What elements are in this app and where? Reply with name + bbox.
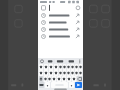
button[interactable]: letter [44, 70, 48, 76]
button[interactable]: letter [63, 70, 66, 76]
button[interactable]: letter [57, 76, 61, 82]
button[interactable]: letter [54, 64, 58, 70]
button[interactable]: letter [44, 64, 48, 70]
button[interactable]: letter [49, 64, 53, 70]
button[interactable]: sym [39, 82, 44, 88]
button[interactable] [38, 4, 83, 11]
button[interactable]: letter [59, 70, 62, 76]
button[interactable]: letter [63, 64, 66, 70]
button[interactable]: letter [79, 64, 82, 70]
button[interactable]: letter [79, 70, 82, 76]
button[interactable]: dot [45, 82, 50, 88]
button[interactable]: Suggestion [38, 19, 83, 26]
button[interactable]: letter [54, 70, 58, 76]
button[interactable]: letter [59, 64, 62, 70]
button[interactable]: letter [67, 64, 70, 70]
button[interactable]: letter [67, 76, 71, 82]
button[interactable]: letter [62, 76, 66, 82]
button[interactable]: letter [39, 70, 43, 76]
button[interactable]: shift [39, 76, 43, 82]
button[interactable]: letter [67, 70, 70, 76]
button[interactable]: letter [49, 70, 53, 76]
button[interactable]: letter [48, 76, 51, 82]
button[interactable]: letter [44, 76, 47, 82]
button[interactable]: Suggestion [38, 26, 83, 33]
button[interactable]: letter [71, 70, 74, 76]
button[interactable]: Suggestion [38, 33, 83, 40]
button[interactable]: Suggestion [38, 12, 83, 19]
button[interactable]: backspace [77, 76, 82, 82]
button[interactable]: send [75, 82, 82, 88]
button[interactable]: space [51, 82, 68, 88]
button[interactable]: letter [39, 64, 43, 70]
button[interactable]: letter [75, 64, 78, 70]
button[interactable]: letter [75, 70, 78, 76]
button[interactable]: letter [52, 76, 56, 82]
button[interactable]: letter [72, 76, 76, 82]
button[interactable]: dot [69, 82, 74, 88]
button[interactable]: letter [71, 64, 74, 70]
